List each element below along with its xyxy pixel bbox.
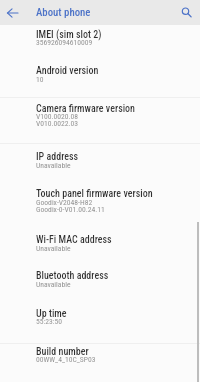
staticText: 10 [36, 75, 44, 84]
staticText: Android version [36, 65, 99, 77]
staticText: About phone [36, 6, 91, 19]
staticText: IP address [36, 151, 79, 163]
button[interactable]: IP address [0, 143, 200, 184]
staticText: Bluetooth address [36, 270, 109, 282]
staticText: IMEI (sim slot 2) [36, 29, 102, 41]
staticText: 356926094610009 [36, 38, 93, 47]
button[interactable]: Touch panel firmware version [0, 184, 200, 227]
staticText: 00WW_4_10C_SP03 [36, 355, 96, 364]
button[interactable]: Camera firmware version [0, 97, 200, 143]
staticText: Touch panel firmware version [36, 188, 153, 200]
staticText: Up time [36, 308, 67, 320]
staticText: Unavailable [36, 244, 71, 253]
staticText: V010.0022.03 [36, 119, 78, 128]
button[interactable]: Search [173, 0, 200, 25]
button[interactable]: Android version [0, 60, 200, 97]
button[interactable]: Build number [0, 343, 200, 382]
button[interactable]: Up time [0, 302, 200, 343]
staticText: Goodix-V2048-H82 [36, 198, 93, 207]
staticText: V100.0020.08 [36, 112, 78, 121]
staticText: Camera firmware version [36, 103, 135, 115]
staticText: Build number [36, 346, 89, 358]
button[interactable]: Wi-Fi MAC address [0, 227, 200, 264]
button[interactable]: Navigate up [0, 0, 26, 25]
button[interactable]: IMEI (sim slot 2) [0, 25, 200, 60]
staticText: Goodix-0-V01.00.24.11 [36, 205, 105, 214]
staticText: Wi-Fi MAC address [36, 234, 112, 246]
staticText: Unavailable [36, 161, 71, 170]
staticText: 55:23:50 [36, 317, 63, 326]
button[interactable]: Bluetooth address [0, 264, 200, 302]
staticText: Unavailable [36, 280, 71, 289]
